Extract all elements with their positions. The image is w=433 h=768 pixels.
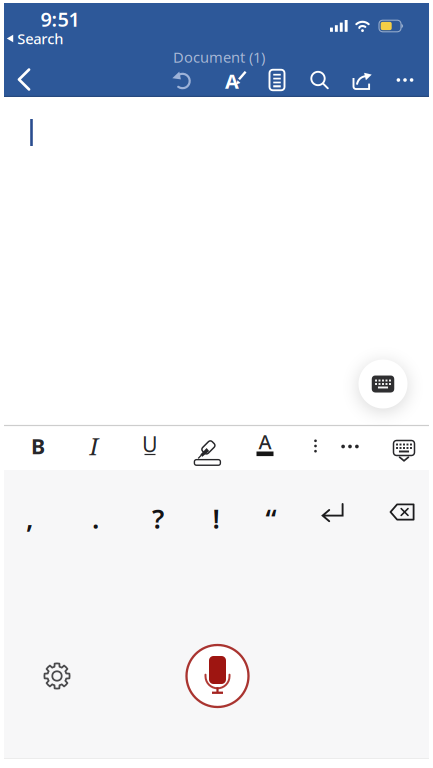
button[interactable]: Bold — [18, 426, 58, 466]
button[interactable]: Share — [344, 63, 380, 97]
staticText: Document (1) — [173, 47, 265, 67]
button[interactable]: , — [6, 496, 52, 540]
staticText: . — [92, 501, 99, 536]
button[interactable]: Return — [309, 491, 355, 533]
button[interactable]: ! — [193, 496, 239, 540]
button[interactable]: Mobile view — [260, 63, 294, 97]
button[interactable]: Undo — [165, 63, 199, 97]
button[interactable]: Formatting — [214, 63, 250, 97]
staticText: U — [142, 430, 158, 458]
button[interactable]: Dictate — [185, 644, 249, 708]
staticText: B — [31, 432, 45, 460]
button[interactable]: Show keyboard — [355, 356, 411, 412]
button[interactable]: Italic — [74, 426, 114, 466]
button[interactable]: Delete — [379, 491, 425, 533]
button[interactable]: Find — [302, 63, 336, 97]
button[interactable]: Back to Search — [7, 29, 63, 48]
button[interactable]: Dictation settings — [36, 655, 78, 697]
staticText: 9:51 — [40, 6, 79, 32]
button[interactable]: More — [388, 63, 422, 97]
button[interactable]: “ — [248, 496, 294, 540]
staticText: A — [258, 428, 271, 455]
staticText: ! — [212, 501, 219, 536]
button[interactable]: More formatting — [331, 426, 369, 466]
button[interactable]: ? — [135, 496, 181, 540]
staticText: I — [89, 430, 98, 462]
staticText: “ — [265, 501, 276, 536]
button[interactable]: . — [72, 496, 118, 540]
staticText: , — [26, 501, 33, 536]
button[interactable]: Font color — [245, 426, 285, 466]
button[interactable]: Hide keyboard — [384, 428, 424, 468]
button[interactable]: Back — [6, 62, 42, 96]
staticText: ? — [152, 501, 164, 536]
staticText: A — [225, 68, 239, 94]
button[interactable]: Highlight — [188, 427, 230, 467]
button[interactable]: Underline — [130, 426, 170, 466]
staticText: Search — [17, 29, 63, 48]
